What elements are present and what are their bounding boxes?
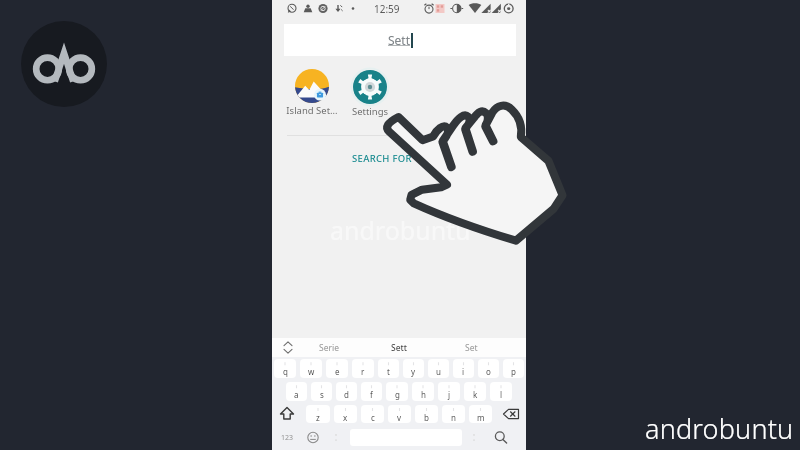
button[interactable]: Settings: [341, 66, 399, 118]
staticText: q: [283, 366, 288, 377]
button[interactable]: Backspace: [496, 405, 526, 423]
staticText: Set: [465, 342, 478, 354]
button[interactable]: n: [442, 405, 465, 423]
button[interactable]: Shift: [272, 405, 302, 423]
staticText: h: [421, 389, 426, 400]
staticText: c: [371, 412, 375, 423]
staticText: Island Set…: [283, 104, 341, 117]
staticText: n: [451, 412, 456, 423]
button[interactable]: m: [469, 405, 492, 423]
button[interactable]: Emoji: [302, 429, 324, 446]
button[interactable]: k: [464, 382, 486, 401]
staticText: Serie: [319, 342, 339, 354]
button[interactable]: d: [336, 382, 357, 401]
button[interactable]: t: [378, 359, 399, 378]
button[interactable]: o: [478, 359, 499, 378]
staticText: Settings: [341, 105, 399, 118]
staticText: k: [473, 389, 478, 400]
staticText: 123: [281, 433, 294, 443]
button[interactable]: y: [403, 359, 424, 378]
staticText: t: [387, 366, 390, 377]
staticText: r: [361, 366, 365, 377]
button[interactable]: q: [274, 359, 296, 378]
button[interactable]: b: [415, 405, 438, 423]
staticText: Sett: [388, 32, 411, 48]
staticText: e: [335, 366, 340, 377]
staticText: androbuntu: [330, 213, 471, 247]
button[interactable]: u: [428, 359, 449, 378]
button[interactable]: Sett: [371, 338, 427, 357]
button[interactable]: j: [438, 382, 460, 401]
button[interactable]: h: [412, 382, 434, 401]
staticText: b: [424, 412, 429, 423]
staticText: m: [477, 412, 485, 423]
button[interactable]: g: [386, 382, 408, 401]
staticText: g: [395, 389, 400, 400]
staticText: o: [486, 366, 491, 377]
button[interactable]: i: [453, 359, 474, 378]
button[interactable]: z: [306, 405, 330, 423]
staticText: s: [320, 389, 324, 400]
button[interactable]: f: [361, 382, 382, 401]
staticText: v: [397, 412, 402, 423]
staticText: j: [448, 389, 451, 400]
button[interactable]: l: [490, 382, 512, 401]
button[interactable]: c: [361, 405, 384, 423]
staticText: f: [370, 389, 373, 400]
staticText: Sett: [391, 342, 408, 354]
staticText: a: [294, 389, 299, 400]
button[interactable]: a: [286, 382, 307, 401]
button[interactable]: Serie: [301, 338, 357, 357]
button[interactable]: s: [311, 382, 332, 401]
button[interactable]: r: [352, 359, 374, 378]
staticText: z: [316, 412, 320, 423]
button[interactable]: Sett: [284, 24, 516, 56]
staticText: i: [462, 366, 465, 377]
button[interactable]: 123: [274, 429, 300, 446]
staticText: d: [344, 389, 349, 400]
button[interactable]: v: [388, 405, 411, 423]
staticText: l: [500, 389, 503, 400]
button[interactable]: x: [334, 405, 357, 423]
button[interactable]: SEARCH FOR "SETT": [272, 148, 526, 168]
button[interactable]: Island Settings: [283, 65, 341, 117]
staticText: SEARCH FOR "SETT": [352, 152, 446, 165]
staticText: y: [411, 366, 416, 377]
button[interactable]: p: [503, 359, 524, 378]
button[interactable]: Androbuntu logo: [21, 21, 107, 107]
staticText: w: [308, 366, 315, 377]
button[interactable]: Set: [443, 338, 499, 357]
staticText: 12:59: [374, 2, 400, 16]
staticText: u: [436, 366, 441, 377]
staticText: x: [343, 412, 348, 423]
button[interactable]: Search: [488, 429, 514, 446]
staticText: p: [511, 366, 516, 377]
button[interactable]: More suggestions: [276, 338, 300, 357]
staticText: androbuntu: [645, 410, 794, 447]
button[interactable]: e: [326, 359, 348, 378]
button[interactable]: w: [300, 359, 322, 378]
